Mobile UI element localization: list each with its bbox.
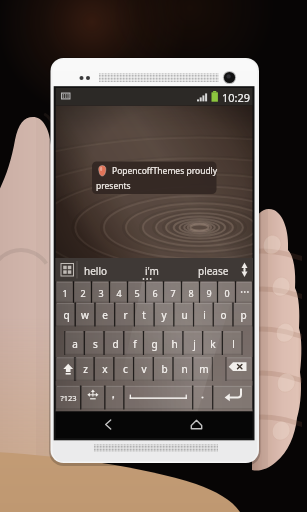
staticText: r [123,308,128,322]
staticText: i [203,308,206,322]
staticText: n [181,362,188,376]
staticText: f [133,337,137,351]
staticText: z [83,362,88,376]
staticText: o [220,308,227,322]
staticText: hello [84,264,108,278]
staticText: 5 [134,287,140,299]
staticText: 8 [188,287,194,299]
staticText: h [171,337,178,351]
staticText: v [141,362,147,376]
staticText: 0 [224,287,230,299]
staticText: t [142,308,146,322]
staticText: x [102,362,108,376]
staticText: presents [96,180,131,192]
staticText: 6 [152,287,158,299]
staticText: 9 [206,287,212,299]
staticText: u [181,308,188,322]
staticText: e [102,308,108,322]
staticText: s [93,337,98,351]
staticText: y [161,308,167,322]
staticText: ?123 [60,393,77,403]
staticText: q [63,308,70,322]
staticText: d [112,337,119,351]
staticText: 7 [170,287,176,299]
staticText: j [193,337,196,351]
staticText: l [232,337,235,351]
staticText: k [210,337,216,351]
staticText: m [199,362,209,376]
staticText: PopencoffThemes proudly [112,165,218,177]
staticText: 3 [98,287,104,299]
staticText: i'm [145,264,159,278]
staticText: 1 [62,287,68,299]
staticText: 2 [80,287,86,299]
staticText: 10:29 [222,90,251,105]
staticText: c [123,362,128,376]
staticText: 4 [116,287,122,299]
staticText: b [161,362,168,376]
staticText: a [72,337,78,351]
staticText: please [198,264,229,278]
staticText: w [81,308,89,322]
staticText: g [151,337,158,351]
staticText: p [240,308,247,322]
